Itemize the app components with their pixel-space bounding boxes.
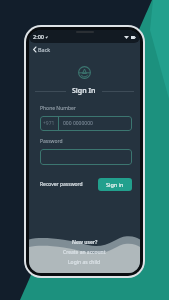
staticText: Sign in: [106, 181, 124, 188]
staticText: Recover password: [40, 181, 83, 188]
staticText: Create an account: [63, 249, 106, 256]
staticText: 000 0000000: [63, 120, 93, 127]
button[interactable]: Login as child: [68, 259, 101, 266]
button[interactable]: Recover password: [40, 178, 83, 191]
button[interactable]: +971: [40, 116, 132, 131]
button[interactable]: [40, 149, 132, 165]
staticText: Back: [38, 46, 51, 53]
staticText: Password: [40, 138, 63, 145]
staticText: 2:00: [33, 33, 44, 40]
button[interactable]: Create an account: [63, 249, 106, 256]
staticText: Phone Number: [40, 105, 76, 112]
button[interactable]: Back: [29, 43, 57, 56]
staticText: New user?: [72, 239, 98, 246]
staticText: +971: [43, 120, 55, 127]
staticText: Sign In: [72, 86, 96, 96]
staticText: Login as child: [68, 259, 101, 266]
button[interactable]: Sign in: [98, 178, 132, 191]
